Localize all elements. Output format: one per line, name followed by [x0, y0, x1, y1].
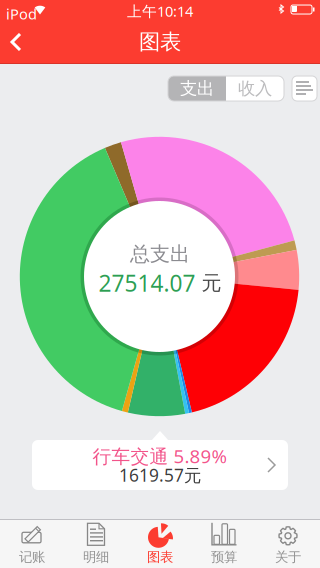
- staticText: iPod: [6, 4, 37, 23]
- staticText: 支出: [180, 78, 214, 99]
- staticText: 1619.57元: [119, 463, 201, 486]
- button[interactable]: 关于: [256, 520, 320, 568]
- staticText: 总支出: [130, 242, 190, 266]
- staticText: 上午10:14: [127, 1, 193, 21]
- staticText: 预算: [211, 549, 237, 565]
- button[interactable]: 预算: [192, 520, 256, 568]
- staticText: 图表: [147, 549, 173, 565]
- button[interactable]: 记账: [0, 520, 64, 568]
- staticText: 记账: [19, 549, 45, 565]
- staticText: 图表: [139, 29, 181, 55]
- staticText: 关于: [275, 549, 301, 565]
- staticText: 行车交通 5.89%: [92, 444, 227, 468]
- button[interactable]: 图表: [128, 520, 192, 568]
- button[interactable]: 明细: [64, 520, 128, 568]
- button[interactable]: [0, 0, 40, 44]
- staticText: 收入: [238, 78, 272, 99]
- staticText: 明细: [83, 549, 109, 565]
- button[interactable]: 支出: [168, 76, 226, 101]
- staticText: 元: [201, 271, 221, 295]
- button[interactable]: [292, 76, 317, 101]
- button[interactable]: 收入: [226, 76, 284, 101]
- staticText: 27514.07: [98, 268, 195, 298]
- button[interactable]: 行车交通 5.89%: [0, 0, 320, 568]
